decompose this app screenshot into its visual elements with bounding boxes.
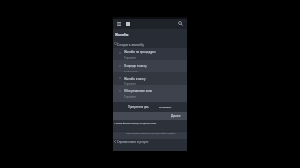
staticText: Прикрепить док.	[128, 105, 150, 109]
staticText: Далее	[171, 114, 181, 118]
button[interactable]	[113, 60, 187, 72]
button[interactable]: Далее	[171, 114, 181, 118]
button[interactable]	[113, 72, 187, 85]
staticText: Отправить	[159, 105, 172, 108]
staticText: Здесь можно оставить отзыв для любого ад…	[126, 132, 176, 135]
button[interactable]: Search	[176, 19, 185, 28]
staticText: Создать жалобу	[117, 42, 144, 47]
button[interactable]	[113, 85, 187, 102]
button[interactable]: Прикрепить док.	[128, 105, 150, 109]
staticText: Жалоба на процедуры	[124, 50, 156, 54]
staticText: Справочники и услуги	[117, 140, 149, 144]
staticText: Очередь в кассу	[124, 64, 147, 68]
staticText: А также форма помощи по другой теме	[114, 122, 157, 125]
staticText: Терапевт	[124, 56, 136, 60]
button[interactable]: Создать жалобу	[113, 40, 187, 47]
button[interactable]: Open navigation menu	[114, 19, 123, 28]
button[interactable]: Справочники и услуги	[113, 138, 187, 145]
staticText: Терапевт	[124, 82, 136, 86]
staticText: Жалобы	[115, 32, 129, 36]
button[interactable]: Отправить	[159, 105, 172, 108]
button[interactable]: Application logo	[123, 19, 132, 28]
staticText: Регистратор	[124, 70, 138, 73]
staticText: Жалоба в кассу	[124, 77, 146, 81]
staticText: Терапевт	[124, 95, 136, 99]
button[interactable]	[113, 48, 187, 60]
staticText: Обслуживание зала	[124, 89, 152, 93]
